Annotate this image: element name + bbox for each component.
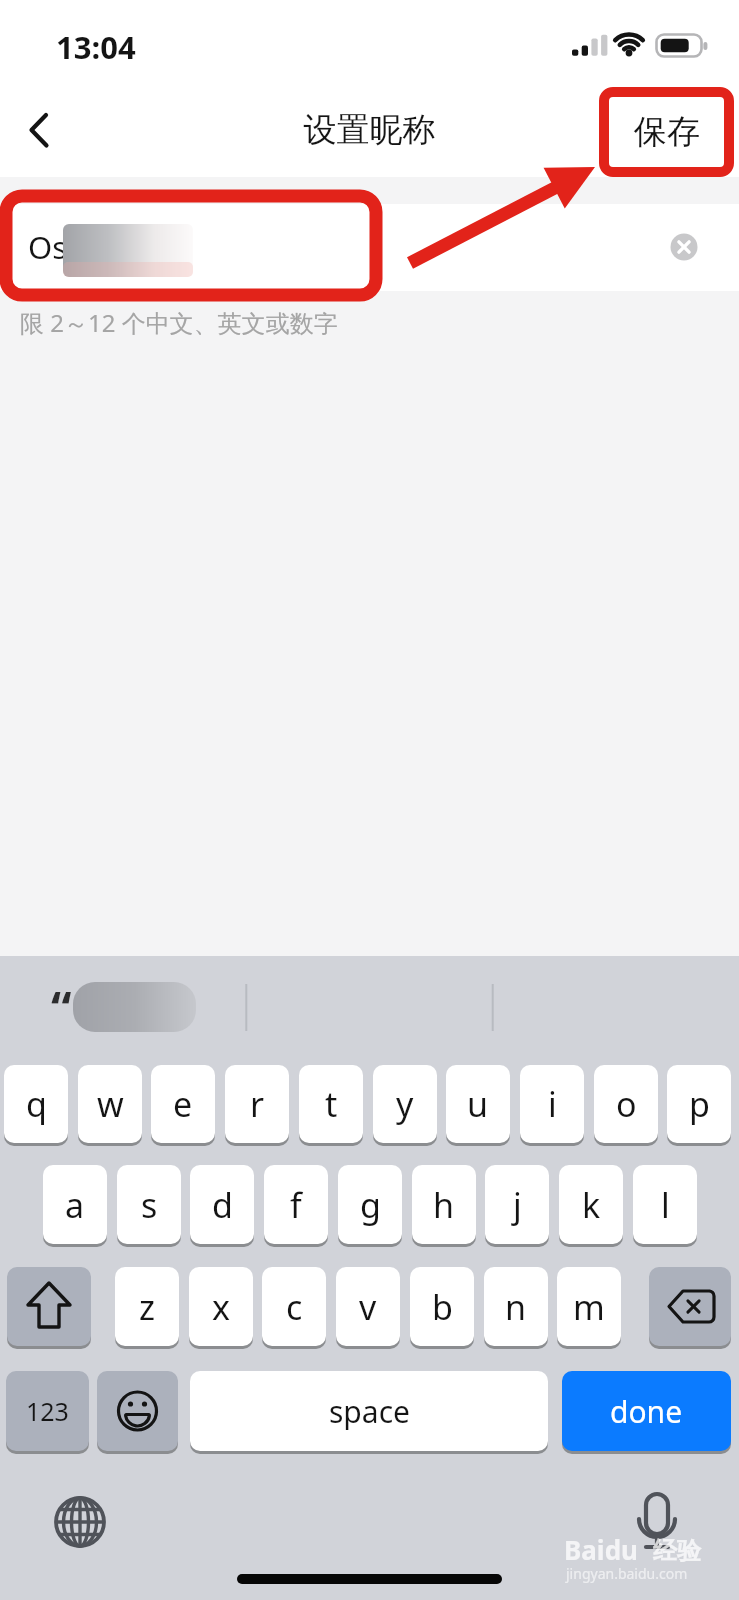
button[interactable]: x [189, 1267, 253, 1346]
staticText: t [325, 1081, 338, 1127]
staticText: d [212, 1182, 233, 1228]
button[interactable]: 123 [6, 1371, 89, 1451]
staticText: 保存 [634, 111, 700, 153]
button[interactable]: m [557, 1267, 621, 1346]
staticText: s [141, 1182, 158, 1228]
staticText: r [250, 1081, 265, 1127]
button[interactable]: w [78, 1065, 142, 1143]
staticText: n [505, 1284, 527, 1330]
staticText: 123 [26, 1394, 69, 1428]
staticText: “ [51, 976, 72, 1039]
button[interactable]: e [151, 1065, 215, 1143]
button[interactable]: t [299, 1065, 363, 1143]
button[interactable]: n [484, 1267, 548, 1346]
button[interactable]: o [594, 1065, 658, 1143]
staticText: 限 2～12 个中文、英文或数字 [20, 306, 338, 339]
button[interactable] [97, 1371, 178, 1451]
staticText: w [97, 1081, 124, 1127]
staticText: Baidu [564, 1532, 638, 1567]
staticText: j [513, 1182, 522, 1228]
button[interactable]: q [4, 1065, 68, 1143]
button[interactable]: 保存 [604, 92, 729, 172]
staticText: jingyan.baidu.com [566, 1564, 688, 1583]
staticText: i [548, 1081, 557, 1127]
button[interactable]: k [559, 1165, 623, 1244]
staticText: z [139, 1284, 155, 1330]
staticText: v [359, 1284, 377, 1330]
staticText: done [610, 1391, 683, 1432]
button[interactable]: s [117, 1165, 181, 1244]
button[interactable]: f [264, 1165, 328, 1244]
staticText: x [212, 1284, 230, 1330]
staticText: 经验 [653, 1536, 701, 1566]
button[interactable]: l [633, 1165, 697, 1244]
staticText: 13:04 [56, 26, 136, 68]
button[interactable]: i [520, 1065, 584, 1143]
button[interactable]: z [115, 1267, 179, 1346]
button[interactable]: p [667, 1065, 731, 1143]
staticText: u [467, 1081, 489, 1127]
button[interactable]: a [43, 1165, 107, 1244]
button[interactable]: c [262, 1267, 326, 1346]
button[interactable] [649, 1267, 731, 1346]
staticText: h [433, 1182, 455, 1228]
button[interactable]: h [412, 1165, 476, 1244]
button[interactable]: u [446, 1065, 510, 1143]
staticText: Os [28, 226, 68, 268]
button[interactable] [0, 204, 739, 291]
staticText: e [173, 1081, 193, 1127]
staticText: l [661, 1182, 670, 1228]
staticText: f [290, 1182, 302, 1228]
staticText: o [616, 1081, 637, 1127]
staticText: p [689, 1081, 710, 1127]
button[interactable]: done [562, 1371, 731, 1451]
staticText: a [65, 1182, 85, 1228]
button[interactable]: b [410, 1267, 474, 1346]
button[interactable] [7, 1267, 91, 1346]
staticText: m [573, 1284, 605, 1330]
staticText: c [286, 1284, 303, 1330]
button[interactable]: d [190, 1165, 254, 1244]
button[interactable]: g [338, 1165, 402, 1244]
staticText: q [26, 1081, 47, 1127]
button[interactable]: v [336, 1267, 400, 1346]
button[interactable]: j [485, 1165, 549, 1244]
button[interactable]: r [225, 1065, 289, 1143]
button[interactable]: y [373, 1065, 437, 1143]
staticText: space [329, 1391, 410, 1432]
staticText: b [432, 1284, 453, 1330]
staticText: k [582, 1182, 601, 1228]
staticText: g [360, 1182, 381, 1228]
button[interactable]: space [190, 1371, 548, 1451]
staticText: 设置昵称 [0, 109, 739, 151]
button[interactable] [12, 100, 68, 162]
staticText: y [396, 1081, 414, 1127]
